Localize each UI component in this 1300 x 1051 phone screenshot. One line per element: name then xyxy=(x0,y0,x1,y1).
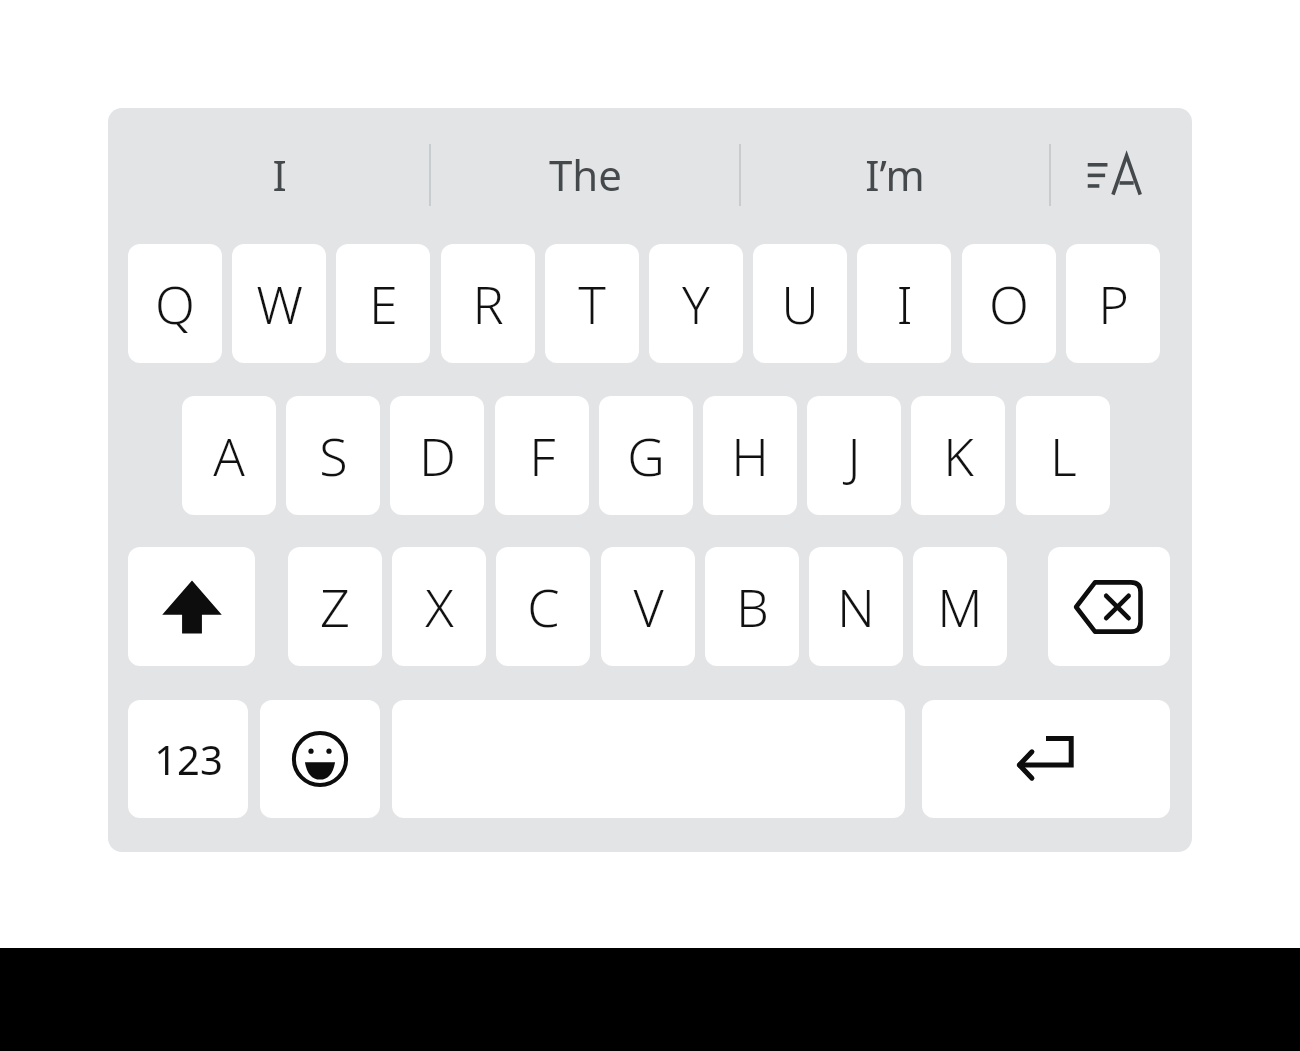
staticText: 123 xyxy=(154,732,223,786)
staticText: G xyxy=(627,420,665,491)
button[interactable]: Emoji xyxy=(260,700,380,818)
button[interactable]: E xyxy=(336,244,430,363)
button[interactable]: U xyxy=(753,244,847,363)
button[interactable]: Enter xyxy=(922,700,1170,818)
staticText: I xyxy=(272,146,287,203)
button[interactable]: Y xyxy=(649,244,743,363)
button[interactable]: Text settings xyxy=(1060,135,1170,213)
button[interactable]: Backspace xyxy=(1048,547,1170,666)
staticText: E xyxy=(369,268,398,339)
button[interactable]: X xyxy=(392,547,486,666)
staticText: N xyxy=(837,571,875,642)
staticText: B xyxy=(736,571,769,642)
staticText: O xyxy=(989,268,1029,339)
button[interactable]: Z xyxy=(288,547,382,666)
staticText: R xyxy=(472,268,504,339)
button[interactable]: Q xyxy=(128,244,222,363)
button[interactable]: G xyxy=(599,396,693,515)
staticText: U xyxy=(781,268,819,339)
staticText: K xyxy=(943,420,974,491)
button[interactable]: L xyxy=(1016,396,1110,515)
button[interactable]: D xyxy=(390,396,484,515)
staticText: T xyxy=(578,268,606,339)
button[interactable]: I xyxy=(857,244,951,363)
button[interactable]: H xyxy=(703,396,797,515)
staticText: S xyxy=(319,420,348,491)
staticText: L xyxy=(1050,420,1077,491)
staticText: J xyxy=(847,420,861,491)
button[interactable]: W xyxy=(232,244,326,363)
staticText: V xyxy=(633,571,664,642)
button[interactable]: B xyxy=(705,547,799,666)
staticText: I’m xyxy=(865,146,925,203)
button[interactable]: Shift xyxy=(128,547,255,666)
button[interactable]: M xyxy=(913,547,1007,666)
button[interactable]: S xyxy=(286,396,380,515)
staticText: C xyxy=(527,571,560,642)
staticText: D xyxy=(419,420,456,491)
staticText: The xyxy=(549,146,622,203)
staticText: Z xyxy=(320,571,350,642)
button[interactable]: J xyxy=(807,396,901,515)
staticText: Y xyxy=(682,268,710,339)
staticText: W xyxy=(256,268,303,339)
staticText: P xyxy=(1098,268,1129,339)
staticText: A xyxy=(213,420,245,491)
button[interactable]: I’m xyxy=(740,118,1050,230)
button[interactable]: The xyxy=(430,118,740,230)
button[interactable]: R xyxy=(441,244,535,363)
button[interactable]: A xyxy=(182,396,276,515)
button[interactable]: K xyxy=(911,396,1005,515)
button[interactable]: P xyxy=(1066,244,1160,363)
button[interactable]: 123 xyxy=(128,700,248,818)
button[interactable]: V xyxy=(601,547,695,666)
staticText: F xyxy=(529,420,556,491)
staticText: H xyxy=(731,420,769,491)
staticText: I xyxy=(896,268,913,339)
button[interactable]: F xyxy=(495,396,589,515)
button[interactable]: C xyxy=(496,547,590,666)
button[interactable]: N xyxy=(809,547,903,666)
staticText: M xyxy=(937,571,983,642)
button[interactable]: T xyxy=(545,244,639,363)
staticText: Q xyxy=(155,268,195,339)
button[interactable]: I xyxy=(128,118,430,230)
button[interactable]: O xyxy=(962,244,1056,363)
staticText: X xyxy=(425,571,454,642)
